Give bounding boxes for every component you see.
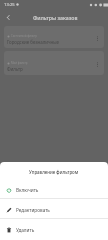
button[interactable]: Включить — [0, 180, 108, 198]
button[interactable]: Редактировать — [0, 199, 108, 218]
button[interactable]: Удалить — [0, 219, 108, 239]
button[interactable]: More options — [91, 32, 104, 45]
staticText: Фильтры заказов — [33, 14, 78, 21]
button[interactable]: Back — [0, 9, 17, 26]
button[interactable]: Системный фильтр — [4, 26, 104, 48]
staticText: Мой фильтр — [11, 61, 28, 65]
staticText: Системный фильтр — [11, 34, 37, 38]
staticText: Фильтр — [7, 66, 23, 72]
staticText: Городские безналичные — [7, 39, 60, 45]
staticText: Удалить — [16, 227, 35, 233]
staticText: Управление фильтром — [29, 169, 79, 175]
staticText: Включить — [16, 187, 39, 193]
staticText: Редактировать — [16, 207, 50, 213]
button[interactable]: More options — [91, 58, 104, 71]
staticText: 13:25 — [4, 2, 15, 8]
